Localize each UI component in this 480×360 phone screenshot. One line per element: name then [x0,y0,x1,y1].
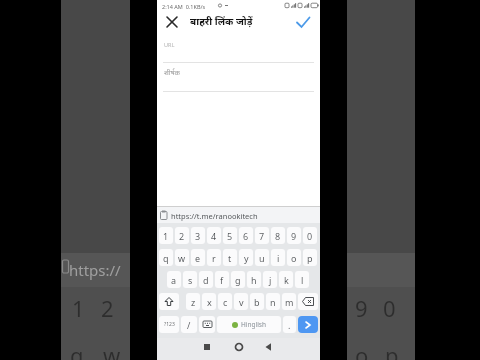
button[interactable]: z [186,293,200,310]
button[interactable]: i [271,249,285,266]
button[interactable]: m [282,293,296,310]
staticText: q [163,252,169,264]
staticText: d [203,274,209,286]
staticText: 4 [211,230,217,242]
button[interactable] [212,338,266,360]
staticText: 2 [101,293,114,323]
staticText: g [235,274,241,286]
button[interactable]: . [283,316,296,333]
button[interactable]: Hinglish [217,316,281,333]
button[interactable]: 4 [207,227,221,244]
staticText: URL [164,41,175,48]
button[interactable]: n [266,293,280,310]
staticText: e [195,252,201,264]
button[interactable]: g [231,271,245,288]
button[interactable]: x [202,293,216,310]
button[interactable]: h [247,271,261,288]
staticText: r [212,252,216,264]
button[interactable] [159,293,179,310]
button[interactable]: b [250,293,264,310]
staticText: p [307,252,313,264]
button[interactable] [165,15,179,29]
button[interactable]: e [191,249,205,266]
staticText: / [187,319,191,331]
button[interactable] [298,316,318,333]
staticText: https:// [69,260,121,280]
button[interactable]: u [255,249,269,266]
staticText: 5 [227,230,233,242]
staticText: 9 [291,230,297,242]
button[interactable]: k [279,271,293,288]
staticText: k [284,274,289,286]
button[interactable]: l [295,271,309,288]
staticText: n [270,296,276,308]
staticText: शीर्षक [164,68,180,78]
staticText: v [239,296,244,308]
button[interactable] [298,293,318,310]
button[interactable]: 6 [239,227,253,244]
button[interactable] [157,338,212,360]
staticText: y [244,252,249,264]
staticText: z [191,296,196,308]
button[interactable] [199,316,215,333]
button[interactable]: 1 [159,227,173,244]
staticText: w [178,252,186,264]
button[interactable]: / [181,316,197,333]
staticText: 2:14 AM 0.1KB/s [162,3,206,10]
button[interactable]: q [159,249,173,266]
button[interactable]: o [287,249,301,266]
staticText: i [277,252,280,264]
button[interactable]: v [234,293,248,310]
staticText: h [251,274,257,286]
staticText: t [228,252,232,264]
button[interactable]: 8 [271,227,285,244]
staticText: m [285,296,294,308]
button[interactable]: t [223,249,237,266]
button[interactable] [266,338,320,360]
button[interactable]: 7 [255,227,269,244]
button[interactable]: y [239,249,253,266]
staticText: 6 [243,230,249,242]
staticText: बाहरी लिंक जोड़ें [190,14,253,28]
button[interactable]: c [218,293,232,310]
staticText: b [254,296,260,308]
button[interactable]: f [215,271,229,288]
button[interactable]: d [199,271,213,288]
staticText: https://t.me/ranookitech [171,211,258,221]
button[interactable]: s [183,271,197,288]
staticText: l [301,274,304,286]
staticText: Hinglish [241,320,266,329]
staticText: x [207,296,212,308]
staticText: 1 [163,230,169,242]
staticText: q [70,340,84,360]
staticText: s [188,274,193,286]
button[interactable]: p [303,249,317,266]
staticText: 0 [383,293,396,323]
staticText: c [223,296,228,308]
staticText: w [103,340,121,360]
button[interactable]: r [207,249,221,266]
button[interactable]: w [175,249,189,266]
button[interactable]: 5 [223,227,237,244]
button[interactable] [295,15,312,30]
button[interactable]: 9 [287,227,301,244]
staticText: 1 [72,293,85,323]
staticText: a [171,274,177,286]
button[interactable]: 3 [191,227,205,244]
staticText: 8 [275,230,281,242]
staticText: o [291,252,297,264]
button[interactable]: ?123 [159,316,179,333]
staticText: j [269,274,272,286]
staticText: ?123 [164,321,175,328]
button[interactable]: 0 [303,227,317,244]
staticText: 7 [259,230,265,242]
staticText: 9 [355,293,368,323]
button[interactable]: j [263,271,277,288]
staticText: 3 [195,230,201,242]
button[interactable]: 2 [175,227,189,244]
staticText: p [385,340,399,360]
button[interactable]: a [167,271,181,288]
staticText: . [288,319,291,331]
